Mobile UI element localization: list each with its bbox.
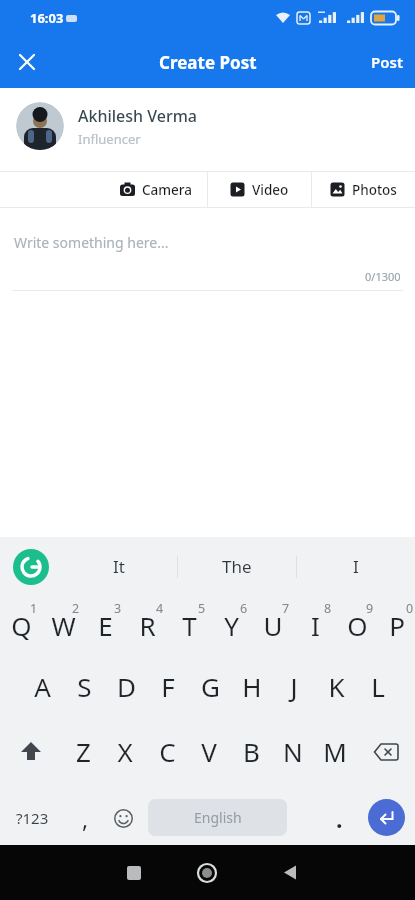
staticText: Influencer xyxy=(78,130,141,148)
staticText: A xyxy=(34,669,51,704)
staticText: Video xyxy=(252,181,289,199)
staticText: 2 xyxy=(72,600,80,617)
button[interactable]: A xyxy=(21,652,63,715)
staticText: V xyxy=(201,734,217,769)
button[interactable]: X xyxy=(104,715,146,780)
staticText: Y xyxy=(224,608,239,643)
button[interactable]: 4 xyxy=(126,590,168,652)
button[interactable]: V xyxy=(188,715,230,780)
staticText: 7 xyxy=(282,600,290,617)
staticText: C xyxy=(159,734,176,769)
button[interactable]: 7 xyxy=(252,590,294,652)
button[interactable] xyxy=(13,549,49,585)
staticText: E xyxy=(98,608,113,643)
staticText: 1 xyxy=(30,600,38,617)
button[interactable]: Z xyxy=(62,715,104,780)
staticText: H xyxy=(242,669,262,704)
button[interactable]: 3 xyxy=(84,590,126,652)
staticText: L xyxy=(371,669,385,704)
staticText: U xyxy=(263,608,283,643)
button[interactable]: It xyxy=(60,540,177,593)
staticText: ?123 xyxy=(16,808,49,828)
button[interactable]: , xyxy=(72,793,98,843)
staticText: Create Post xyxy=(159,51,257,74)
staticText: 9 xyxy=(366,600,374,617)
staticText: 8 xyxy=(324,600,332,617)
staticText: 0/1300 xyxy=(365,269,401,284)
button[interactable]: Post xyxy=(371,52,403,72)
staticText: Z xyxy=(76,734,91,769)
staticText: Q xyxy=(11,608,32,643)
button[interactable] xyxy=(177,845,237,900)
staticText: 6 xyxy=(240,600,248,617)
staticText: X xyxy=(117,734,133,769)
staticText: 3 xyxy=(114,600,122,617)
staticText: W xyxy=(51,608,76,643)
button[interactable] xyxy=(260,845,320,900)
button[interactable]: M xyxy=(314,715,356,780)
staticText: B xyxy=(243,734,260,769)
button[interactable]: J xyxy=(273,652,315,715)
staticText: F xyxy=(161,669,175,704)
button[interactable] xyxy=(108,793,138,843)
button[interactable]: Video xyxy=(208,172,311,207)
staticText: O xyxy=(347,608,368,643)
staticText: I xyxy=(353,555,359,578)
staticText: N xyxy=(283,734,303,769)
button[interactable]: D xyxy=(105,652,147,715)
button[interactable]: 8 xyxy=(294,590,336,652)
button[interactable]: Photos xyxy=(312,172,415,207)
button[interactable]: F xyxy=(147,652,189,715)
staticText: G xyxy=(201,669,220,704)
button[interactable]: I xyxy=(297,540,415,593)
button[interactable]: N xyxy=(272,715,314,780)
staticText: Photos xyxy=(352,181,397,199)
staticText: Post xyxy=(371,52,403,72)
button[interactable]: English xyxy=(148,799,287,836)
button[interactable]: 5 xyxy=(168,590,210,652)
button[interactable] xyxy=(10,45,44,79)
button[interactable] xyxy=(356,715,415,780)
staticText: S xyxy=(77,669,92,704)
button[interactable]: The xyxy=(178,540,296,593)
staticText: English xyxy=(194,808,242,827)
button[interactable]: 9 xyxy=(336,590,378,652)
staticText: Akhilesh Verma xyxy=(78,105,198,127)
staticText: The xyxy=(222,555,252,578)
button[interactable]: 1 xyxy=(0,590,42,652)
staticText: . xyxy=(336,803,343,834)
staticText: M xyxy=(323,734,347,769)
button[interactable]: Camera xyxy=(104,172,207,207)
staticText: T xyxy=(182,608,197,643)
button[interactable] xyxy=(368,799,405,836)
staticText: D xyxy=(117,669,136,704)
button[interactable]: C xyxy=(146,715,188,780)
staticText: 16:03 xyxy=(30,9,64,27)
button[interactable]: 6 xyxy=(210,590,252,652)
staticText: , xyxy=(82,803,89,834)
staticText: J xyxy=(290,669,298,704)
button[interactable]: B xyxy=(230,715,272,780)
staticText: Write something here... xyxy=(14,233,169,252)
button[interactable]: 0 xyxy=(378,590,415,652)
button[interactable]: K xyxy=(315,652,357,715)
button[interactable] xyxy=(0,715,62,780)
staticText: R xyxy=(139,608,156,643)
staticText: 4 xyxy=(156,600,164,617)
staticText: I xyxy=(311,608,320,643)
staticText: 5 xyxy=(198,600,206,617)
staticText: It xyxy=(113,555,125,578)
button[interactable]: L xyxy=(357,652,399,715)
staticText: 0 xyxy=(406,600,414,617)
staticText: K xyxy=(328,669,345,704)
button[interactable]: . xyxy=(326,793,352,843)
button[interactable]: 2 xyxy=(42,590,84,652)
button[interactable] xyxy=(104,845,164,900)
button[interactable]: H xyxy=(231,652,273,715)
button[interactable]: S xyxy=(63,652,105,715)
button[interactable]: ?123 xyxy=(10,793,54,843)
staticText: P xyxy=(389,608,405,643)
staticText: Camera xyxy=(142,181,192,199)
button[interactable]: G xyxy=(189,652,231,715)
